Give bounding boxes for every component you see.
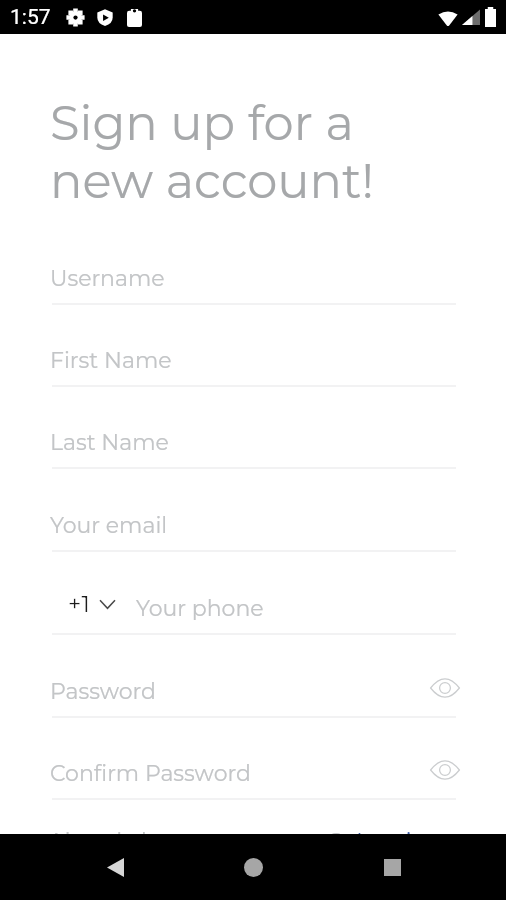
staticText: Sign up for a new account!	[50, 94, 375, 210]
staticText: 1:57	[10, 5, 51, 30]
staticText: Username	[50, 265, 165, 292]
staticText: Password	[50, 678, 156, 705]
button[interactable]: Home	[229, 843, 277, 891]
button[interactable]: Show password	[426, 674, 464, 701]
staticText: Confirm Password	[50, 760, 251, 787]
staticText: Last Name	[50, 429, 169, 456]
staticText: Already have an account?	[48, 827, 356, 855]
staticText: +1	[68, 590, 91, 617]
staticText: Your email	[50, 512, 168, 539]
staticText: Your phone	[136, 595, 264, 622]
button[interactable]: Recents	[368, 843, 416, 891]
button[interactable]: Back	[91, 843, 139, 891]
staticText: First Name	[50, 347, 172, 374]
button[interactable]: +1	[50, 591, 121, 618]
button[interactable]: Show password	[426, 756, 464, 783]
button[interactable]: Already have an account?	[48, 827, 466, 855]
staticText: Log in	[356, 827, 428, 855]
